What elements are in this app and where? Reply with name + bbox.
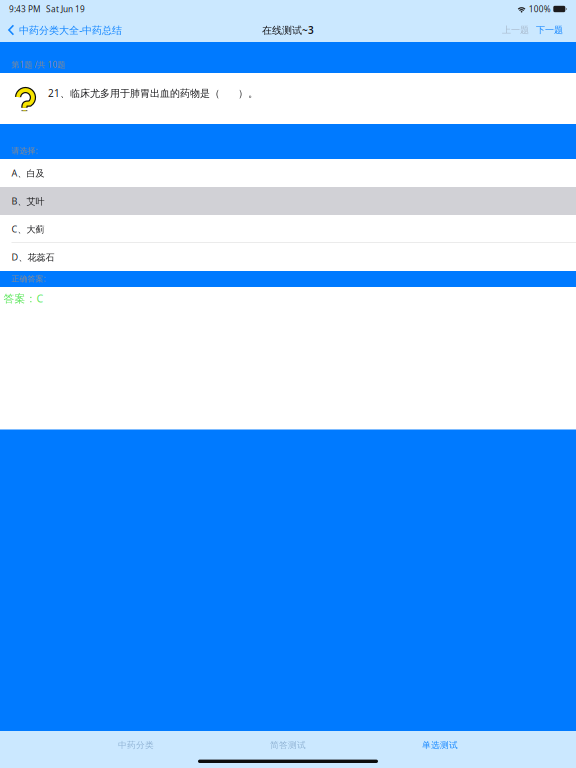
staticText: 请选择:	[11, 145, 37, 156]
staticText: 单选测试	[422, 739, 458, 750]
button[interactable]: C、大蓟	[0, 215, 576, 243]
staticText: 下一题	[536, 24, 563, 36]
button[interactable]: D、花蕊石	[0, 243, 576, 271]
button[interactable]: 下一题	[532, 18, 576, 42]
staticText: 中药分类	[118, 739, 154, 750]
staticText: 上一题	[502, 24, 529, 36]
staticText: 100%	[529, 3, 551, 15]
button[interactable]: 单选测试	[364, 731, 516, 759]
staticText: 在线测试~3	[262, 23, 314, 37]
staticText: 21、临床尤多用于肺胃出血的药物是（ ）。	[48, 86, 258, 100]
staticText: D、花蕊石	[11, 251, 54, 263]
staticText: 简答测试	[270, 739, 306, 750]
staticText: 9:43 PM Sat Jun 19	[9, 3, 85, 15]
staticText: 答案：C	[3, 291, 43, 305]
staticText: A、白及	[11, 167, 44, 179]
button[interactable]: 上一题	[496, 18, 532, 42]
staticText: B、艾叶	[11, 195, 44, 207]
button[interactable]: B、艾叶	[0, 187, 576, 215]
button[interactable]: 中药分类	[60, 731, 212, 759]
button[interactable]: A、白及	[0, 159, 576, 187]
staticText: 中药分类大全-中药总结	[19, 23, 122, 37]
staticText: 正确答案:	[11, 273, 45, 284]
button[interactable]: 中药分类大全-中药总结	[0, 18, 128, 42]
button[interactable]: 简答测试	[212, 731, 364, 759]
staticText: C、大蓟	[11, 223, 44, 235]
staticText: 第1题 /共 10题	[11, 59, 65, 70]
